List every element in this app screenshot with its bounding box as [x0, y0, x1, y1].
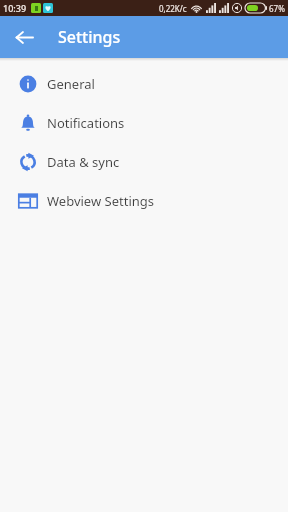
- staticText: 67%: [269, 3, 285, 14]
- staticText: Notifications: [47, 114, 125, 132]
- staticText: 10:39: [3, 2, 27, 14]
- button[interactable]: Notifications: [0, 103, 288, 142]
- staticText: Data & sync: [47, 153, 120, 171]
- staticText: General: [47, 75, 95, 93]
- staticText: Webview Settings: [47, 192, 154, 210]
- button[interactable]: Webview Settings: [0, 181, 288, 220]
- staticText: Settings: [58, 26, 121, 48]
- button[interactable]: Back: [6, 19, 42, 55]
- staticText: 0,22K/c: [159, 3, 187, 14]
- button[interactable]: Data & sync: [0, 142, 288, 181]
- button[interactable]: General: [0, 64, 288, 103]
